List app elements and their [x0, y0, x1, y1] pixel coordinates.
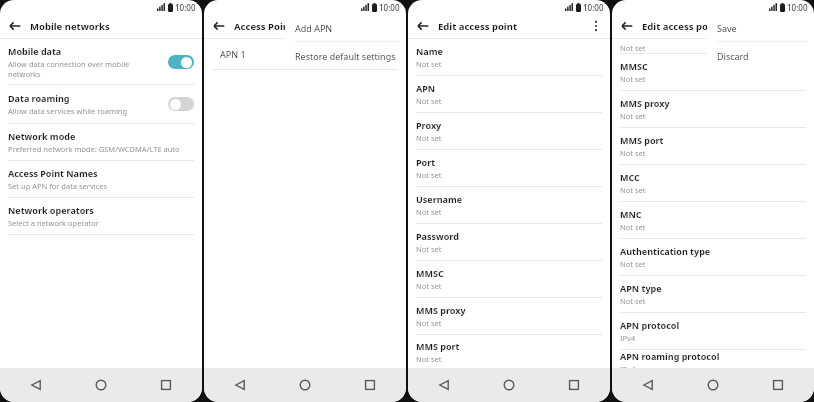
staticText: Preferred network mode: GSM/WCDMA/LTE au… — [8, 144, 180, 154]
staticText: Not set — [620, 259, 646, 269]
staticText: IPv4 — [620, 333, 636, 343]
staticText: Mobile networks — [30, 20, 110, 33]
button[interactable]: Network mode — [0, 124, 202, 160]
button[interactable]: Password — [408, 224, 610, 260]
staticText: IPv4 — [620, 364, 636, 368]
staticText: Not set — [416, 354, 442, 364]
button[interactable]: MMS port — [408, 335, 610, 368]
button[interactable]: Home — [499, 375, 519, 395]
staticText: MMS port — [416, 340, 460, 352]
button[interactable]: Home — [295, 375, 315, 395]
button[interactable]: Access Point Names — [0, 161, 202, 197]
staticText: MNC — [620, 208, 642, 220]
button[interactable]: Network operators — [0, 198, 202, 234]
staticText: APN protocol — [620, 319, 680, 331]
button[interactable]: Back — [434, 375, 454, 395]
staticText: 10:00 — [583, 2, 604, 13]
button[interactable]: Recent apps — [768, 375, 788, 395]
staticText: Not set — [620, 74, 646, 84]
button[interactable]: Back — [230, 375, 250, 395]
button[interactable]: APN type — [612, 276, 814, 312]
button[interactable]: APN 1 — [204, 39, 406, 69]
button[interactable]: Data roaming — [0, 85, 202, 123]
staticText: Not set — [620, 296, 646, 306]
button[interactable]: Proxy — [408, 113, 610, 149]
staticText: Edit access point — [438, 20, 518, 33]
staticText: 10:00 — [175, 2, 196, 13]
button[interactable]: APN — [408, 76, 610, 112]
button[interactable]: Mobile data — [0, 39, 202, 84]
staticText: MMS proxy — [416, 304, 466, 316]
button[interactable]: Add APN — [285, 14, 406, 41]
button[interactable]: Username — [408, 187, 610, 223]
staticText: Access Point Names — [8, 167, 98, 179]
staticText: Network operators — [8, 204, 94, 216]
staticText: Not set — [620, 148, 646, 158]
staticText: MCC — [620, 171, 640, 183]
staticText: Authentication type — [620, 245, 711, 257]
button[interactable]: Back — [620, 19, 634, 33]
button[interactable]: Discard — [707, 42, 814, 69]
button[interactable]: More options — [590, 18, 602, 34]
staticText: Restore default settings — [295, 50, 396, 62]
button[interactable]: MNC — [612, 202, 814, 238]
staticText: Allow data services while roaming — [8, 106, 128, 116]
staticText: Not set — [416, 96, 442, 106]
staticText: Allow data connection over mobile networ… — [8, 59, 130, 79]
button[interactable] — [168, 55, 194, 69]
button[interactable]: MMSC — [612, 54, 814, 90]
button[interactable]: Recent apps — [564, 375, 584, 395]
staticText: Data roaming — [8, 92, 70, 104]
button[interactable]: Authentication type — [612, 239, 814, 275]
staticText: Not set — [620, 222, 646, 232]
staticText: MMSC — [620, 60, 648, 72]
button[interactable]: Back — [212, 19, 226, 33]
button[interactable]: MMS proxy — [408, 298, 610, 334]
button[interactable]: APN roaming protocol — [612, 350, 814, 368]
staticText: Not set — [620, 185, 646, 195]
button[interactable]: MCC — [612, 165, 814, 201]
staticText: Username — [416, 193, 463, 205]
staticText: Not set — [620, 111, 646, 121]
staticText: Not set — [416, 59, 442, 69]
staticText: Proxy — [416, 119, 442, 131]
button[interactable]: Back — [638, 375, 658, 395]
staticText: 10:00 — [379, 2, 400, 13]
staticText: Edit access point — [642, 20, 722, 33]
button[interactable] — [168, 97, 194, 111]
button[interactable]: MMS proxy — [612, 91, 814, 127]
staticText: Not set — [416, 170, 442, 180]
button[interactable]: Back — [8, 19, 22, 33]
staticText: Not set — [416, 207, 442, 217]
staticText: Not set — [416, 244, 442, 254]
button[interactable]: Recent apps — [360, 375, 380, 395]
button[interactable]: Home — [703, 375, 723, 395]
staticText: Name — [416, 45, 443, 57]
staticText: Save — [717, 22, 737, 34]
staticText: MMS port — [620, 134, 664, 146]
staticText: Access Point — [234, 20, 294, 33]
staticText: APN 1 — [220, 48, 246, 60]
button[interactable]: Save — [707, 14, 814, 41]
staticText: Not set — [416, 281, 442, 291]
staticText: APN roaming protocol — [620, 350, 720, 362]
button[interactable]: MMSC — [408, 261, 610, 297]
staticText: Not set — [620, 43, 646, 53]
button[interactable]: Name — [408, 39, 610, 75]
staticText: Set up APN for data services — [8, 181, 108, 191]
button[interactable]: APN protocol — [612, 313, 814, 349]
staticText: Not set — [416, 318, 442, 328]
button[interactable]: Recent apps — [156, 375, 176, 395]
button[interactable]: MMS port — [612, 128, 814, 164]
staticText: APN — [416, 82, 436, 94]
staticText: 10:00 — [787, 2, 808, 13]
staticText: Discard — [717, 50, 749, 62]
staticText: Not set — [416, 133, 442, 143]
button[interactable]: Back — [416, 19, 430, 33]
staticText: MMSC — [416, 267, 444, 279]
button[interactable]: Back — [26, 375, 46, 395]
button[interactable]: Home — [91, 375, 111, 395]
staticText: Select a network operator — [8, 218, 99, 228]
button[interactable]: Restore default settings — [285, 42, 406, 69]
button[interactable]: Port — [408, 150, 610, 186]
